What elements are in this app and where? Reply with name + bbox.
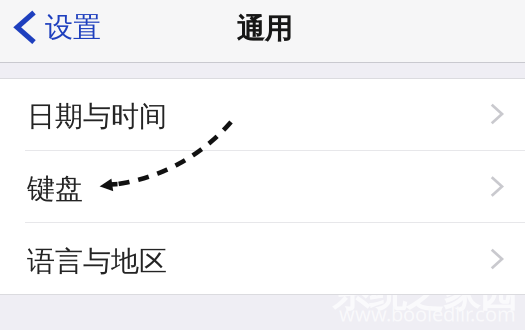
button[interactable]: 键盘 — [0, 151, 525, 222]
staticText: www.booledlir.com — [339, 300, 516, 327]
staticText: 语言与地区 — [27, 244, 167, 279]
staticText: 通用 — [236, 12, 292, 46]
button[interactable]: 语言与地区 — [0, 223, 525, 295]
staticText: 设置 — [45, 10, 101, 45]
button[interactable]: 日期与时间 — [0, 78, 525, 150]
staticText: 日期与时间 — [27, 99, 167, 134]
staticText: 键盘 — [27, 172, 83, 206]
staticText: 系统之家园 — [332, 271, 517, 317]
button[interactable]: 设置 — [0, 0, 109, 62]
